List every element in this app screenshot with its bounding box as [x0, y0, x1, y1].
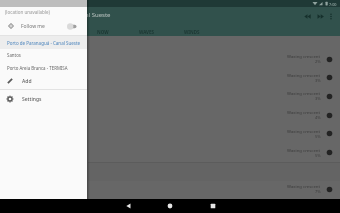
staticText: Porto de Paranaguá - Canal Sueste [13, 11, 111, 19]
staticText: Waxing crescent [287, 183, 321, 189]
button[interactable]: Porto Areia Branca - TERMISA [0, 62, 87, 74]
staticText: Waxing crescent [287, 72, 321, 78]
button[interactable]: Santos [0, 49, 87, 61]
staticText: Waxing crescent [287, 90, 321, 96]
button[interactable]: WAVES [136, 27, 157, 36]
staticText: Porto de Paranaguá - Canal Sueste [7, 40, 81, 46]
staticText: 5% [315, 153, 321, 159]
button[interactable]: Porto de Paranaguá - Canal Sueste [0, 36, 87, 49]
button[interactable]: NOW [95, 27, 110, 36]
staticText: Waxing crescent [287, 109, 321, 115]
button[interactable]: Settings [0, 92, 87, 106]
staticText: NOW [97, 29, 109, 35]
staticText: Waxing crescent [287, 147, 321, 153]
button[interactable]: Follow me [0, 18, 87, 34]
button[interactable]: WINDS [181, 27, 202, 36]
staticText: Follow me [21, 23, 67, 30]
staticText: 2% [315, 59, 321, 65]
staticText: (location unavailable) [5, 9, 50, 15]
staticText: 5% [315, 134, 321, 140]
staticText: 3% [315, 96, 321, 102]
staticText: Add [22, 78, 32, 85]
staticText: Porto Areia Branca - TERMISA [7, 65, 68, 71]
staticText: 7% [315, 189, 321, 195]
staticText: 4% [315, 115, 321, 121]
staticText: WAVES [139, 29, 155, 35]
staticText: Waxing crescent [287, 128, 321, 134]
staticText: WINDS [184, 29, 200, 35]
staticText: Santos [7, 52, 21, 58]
button[interactable]: Add [0, 74, 87, 88]
staticText: Waxing crescent [287, 53, 321, 59]
staticText: 7:00 [329, 2, 337, 7]
staticText: 3% [315, 78, 321, 84]
staticText: Settings [22, 96, 42, 103]
